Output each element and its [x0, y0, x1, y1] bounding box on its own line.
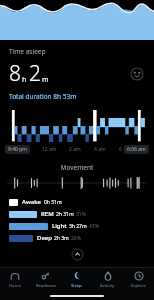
button[interactable]: Home [0, 268, 30, 292]
staticText: 31% [76, 211, 86, 218]
staticText: 26% [71, 235, 81, 242]
staticText: 2 am [69, 146, 81, 153]
staticText: Home [9, 283, 21, 289]
staticText: Sleep [71, 283, 82, 289]
staticText: Light [52, 222, 67, 230]
staticText: 4 am [94, 146, 106, 153]
button[interactable]: Readiness [30, 268, 61, 292]
staticText: h [22, 75, 27, 85]
button[interactable]: Light [0, 221, 154, 231]
staticText: Explore [131, 283, 146, 289]
staticText: m [42, 75, 49, 85]
staticText: 0h 51m [44, 199, 62, 206]
staticText: Time asleep [9, 47, 46, 56]
staticText: 6 [119, 146, 122, 153]
button[interactable]: Collapse [71, 248, 84, 261]
staticText: REM [41, 210, 54, 218]
staticText: 3h 27m [69, 223, 87, 230]
staticText: 2h 3m [54, 235, 69, 242]
staticText: Activity [100, 283, 115, 289]
button[interactable]: Sleep [61, 268, 92, 292]
button[interactable]: Deep [0, 233, 154, 243]
staticText: 2h 31m [56, 211, 74, 218]
staticText: Deep [37, 234, 52, 242]
staticText: 9:40 pm [8, 146, 27, 153]
button[interactable]: Activity [92, 268, 123, 292]
staticText: Total duration 8h 53m [9, 92, 77, 101]
staticText: Awake [22, 198, 42, 206]
button[interactable]: Explore [123, 268, 154, 292]
staticText: Readiness [36, 283, 56, 289]
button[interactable]: REM [0, 209, 154, 219]
button[interactable]: Sleep mood [129, 66, 145, 82]
staticText: 8 [9, 59, 21, 88]
button[interactable]: Awake [0, 197, 154, 207]
staticText: 43% [89, 223, 99, 230]
staticText: 6:06 am [127, 146, 146, 153]
staticText: Movement [0, 163, 154, 172]
staticText: 12 am [42, 146, 57, 153]
staticText: 2 [29, 59, 41, 88]
